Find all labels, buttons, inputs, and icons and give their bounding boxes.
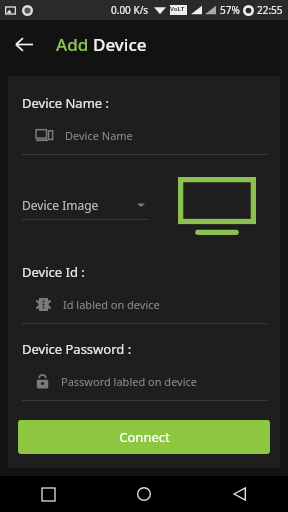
staticText: Add bbox=[56, 33, 93, 56]
staticText: Device Id : bbox=[22, 263, 85, 281]
staticText: Id labled on device bbox=[63, 297, 160, 312]
staticText: Device Name bbox=[65, 128, 133, 143]
button[interactable]: Device Image bbox=[22, 197, 148, 220]
staticText: 57% bbox=[220, 3, 240, 17]
staticText: VoLTE bbox=[170, 5, 187, 15]
staticText: 22:55 bbox=[257, 3, 283, 17]
other: Device image preview bbox=[178, 177, 256, 239]
staticText: Connect bbox=[119, 428, 170, 446]
button[interactable]: Devices bbox=[22, 124, 267, 146]
staticText: Password labled on device bbox=[61, 374, 198, 389]
other: Device Id bbox=[36, 298, 51, 311]
other: Devices bbox=[36, 128, 53, 142]
button[interactable]: Recent apps bbox=[0, 476, 96, 512]
button[interactable]: Back bbox=[192, 476, 288, 512]
button[interactable]: Connect bbox=[18, 420, 270, 454]
button[interactable]: Back bbox=[6, 26, 42, 62]
other: Password bbox=[36, 374, 49, 389]
button[interactable]: Device Id bbox=[22, 293, 267, 315]
button[interactable]: Home bbox=[96, 476, 192, 512]
staticText: Device bbox=[93, 33, 147, 56]
button[interactable]: Password bbox=[22, 370, 267, 392]
staticText: Device Name : bbox=[22, 94, 109, 112]
staticText: Device Password : bbox=[22, 340, 132, 358]
staticText: Device Image bbox=[22, 197, 99, 213]
staticText: 0.00 K/s bbox=[111, 3, 149, 17]
